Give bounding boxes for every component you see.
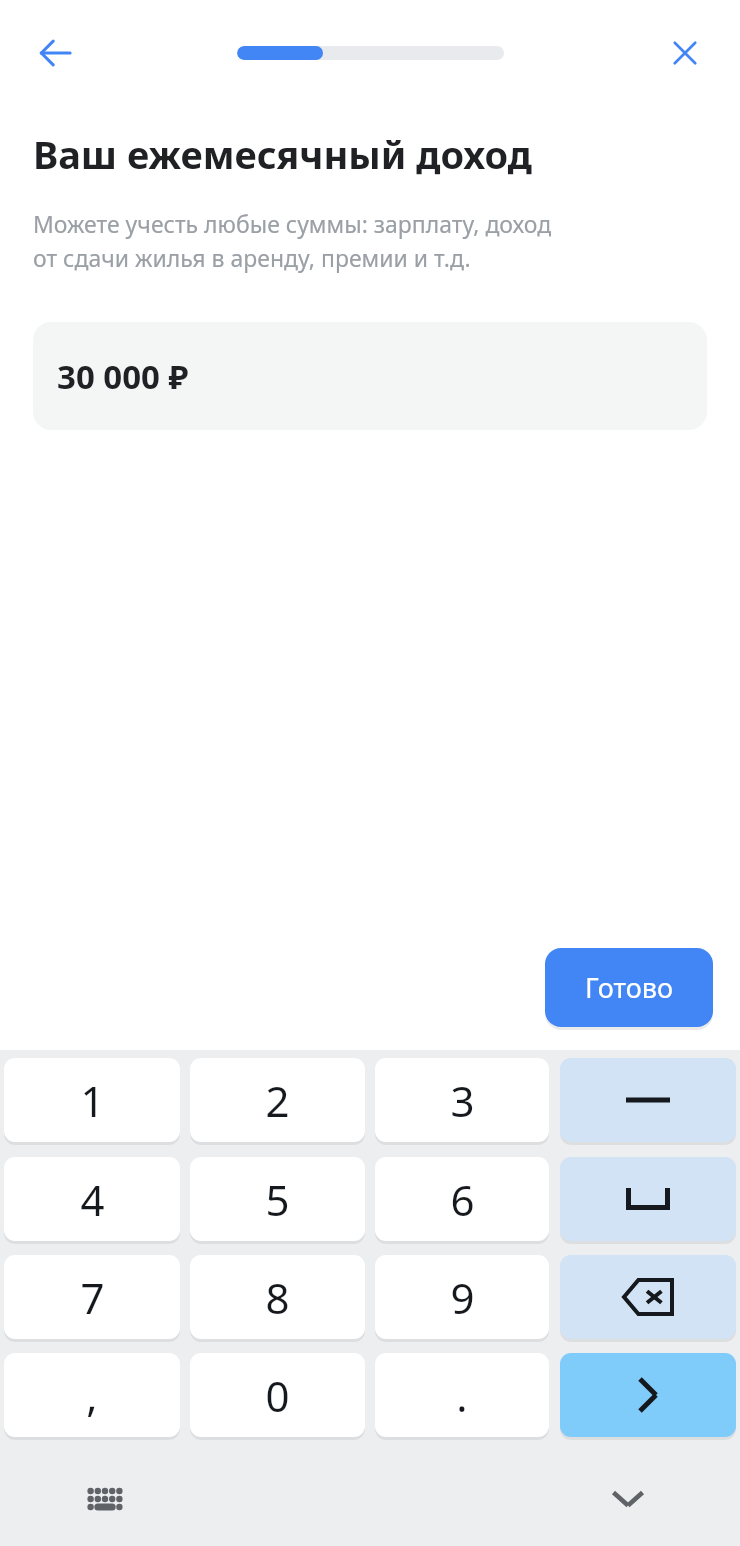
button[interactable]: 6 (375, 1157, 549, 1241)
button[interactable]: 8 (190, 1255, 365, 1339)
button[interactable]: , (4, 1353, 180, 1437)
button[interactable]: Enter (560, 1353, 736, 1437)
staticText: Можете учесть любые суммы: зарплату, дох… (33, 208, 693, 273)
button[interactable]: Backspace (560, 1255, 736, 1339)
button[interactable]: 5 (190, 1157, 365, 1241)
button[interactable]: 30 000 ₽ (33, 322, 707, 430)
button[interactable]: Switch keyboard (65, 1459, 145, 1539)
staticText: 8 (265, 1269, 290, 1326)
button[interactable]: 0 (190, 1353, 365, 1437)
staticText: , (86, 1367, 98, 1424)
staticText: 9 (450, 1269, 475, 1326)
staticText: 6 (450, 1171, 475, 1228)
staticText: 1 (80, 1072, 105, 1129)
staticText: Готово (585, 969, 674, 1006)
button[interactable]: Space (560, 1157, 736, 1241)
staticText: 30 000 ₽ (57, 354, 189, 399)
staticText: 5 (265, 1171, 290, 1228)
staticText: Ваш ежемесячный доход (33, 128, 532, 180)
staticText: 0 (265, 1367, 290, 1424)
button[interactable]: 4 (4, 1157, 180, 1241)
button[interactable]: 9 (375, 1255, 549, 1339)
staticText: 3 (450, 1072, 475, 1129)
staticText: 4 (80, 1171, 105, 1228)
button[interactable]: Готово (545, 948, 713, 1027)
button[interactable]: 2 (190, 1058, 365, 1142)
staticText: 7 (80, 1269, 105, 1326)
staticText: 2 (265, 1072, 290, 1129)
button[interactable]: Minus (560, 1058, 736, 1142)
button[interactable]: Close (650, 18, 720, 88)
button[interactable]: Hide keyboard (588, 1459, 668, 1539)
staticText: . (456, 1367, 468, 1424)
button[interactable]: 3 (375, 1058, 549, 1142)
button[interactable]: 7 (4, 1255, 180, 1339)
button[interactable]: . (375, 1353, 549, 1437)
button[interactable]: 1 (4, 1058, 180, 1142)
button[interactable]: Back (20, 18, 90, 88)
